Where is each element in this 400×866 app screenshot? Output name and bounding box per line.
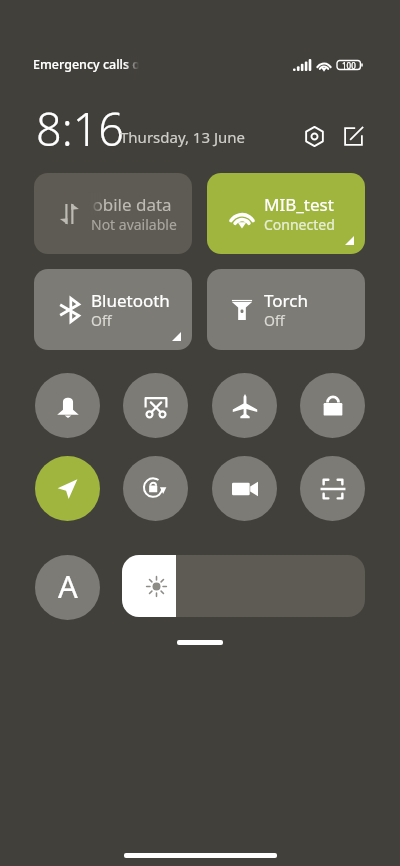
staticText: Off (91, 311, 112, 330)
staticText: Emergency calls on (33, 56, 139, 73)
button[interactable]: Scanner (300, 456, 365, 521)
button[interactable]: Auto brightness (35, 555, 100, 620)
staticText: Bluetooth (91, 289, 170, 311)
button[interactable]: Screenshot (123, 373, 188, 438)
button[interactable]: Auto rotate (123, 456, 188, 521)
staticText: A (58, 565, 78, 607)
button[interactable]: Airplane mode (212, 373, 277, 438)
button[interactable]: Edit tiles (338, 121, 368, 151)
button[interactable]: Brightness (122, 555, 365, 617)
staticText: MIB_test (264, 193, 334, 215)
button[interactable]: Notifications (35, 373, 100, 438)
button[interactable]: Torch (207, 269, 365, 350)
staticText: Not available (91, 215, 177, 234)
button[interactable]: Bluetooth (34, 269, 192, 350)
staticText: Torch (264, 289, 308, 311)
staticText: 100 (342, 60, 356, 71)
button[interactable]: Screen lock (300, 373, 365, 438)
button[interactable]: MIB_test (207, 173, 365, 254)
staticText: Connected (264, 215, 335, 234)
button[interactable]: Mobile data (34, 173, 192, 254)
staticText: 8:16 (36, 98, 125, 159)
staticText: Off (264, 311, 285, 330)
button[interactable]: Location (35, 456, 100, 521)
button[interactable]: Settings (299, 121, 329, 151)
staticText: Mobile data (91, 193, 172, 215)
button[interactable]: Screen recorder (212, 456, 277, 521)
staticText: Thursday, 13 June (120, 127, 246, 147)
